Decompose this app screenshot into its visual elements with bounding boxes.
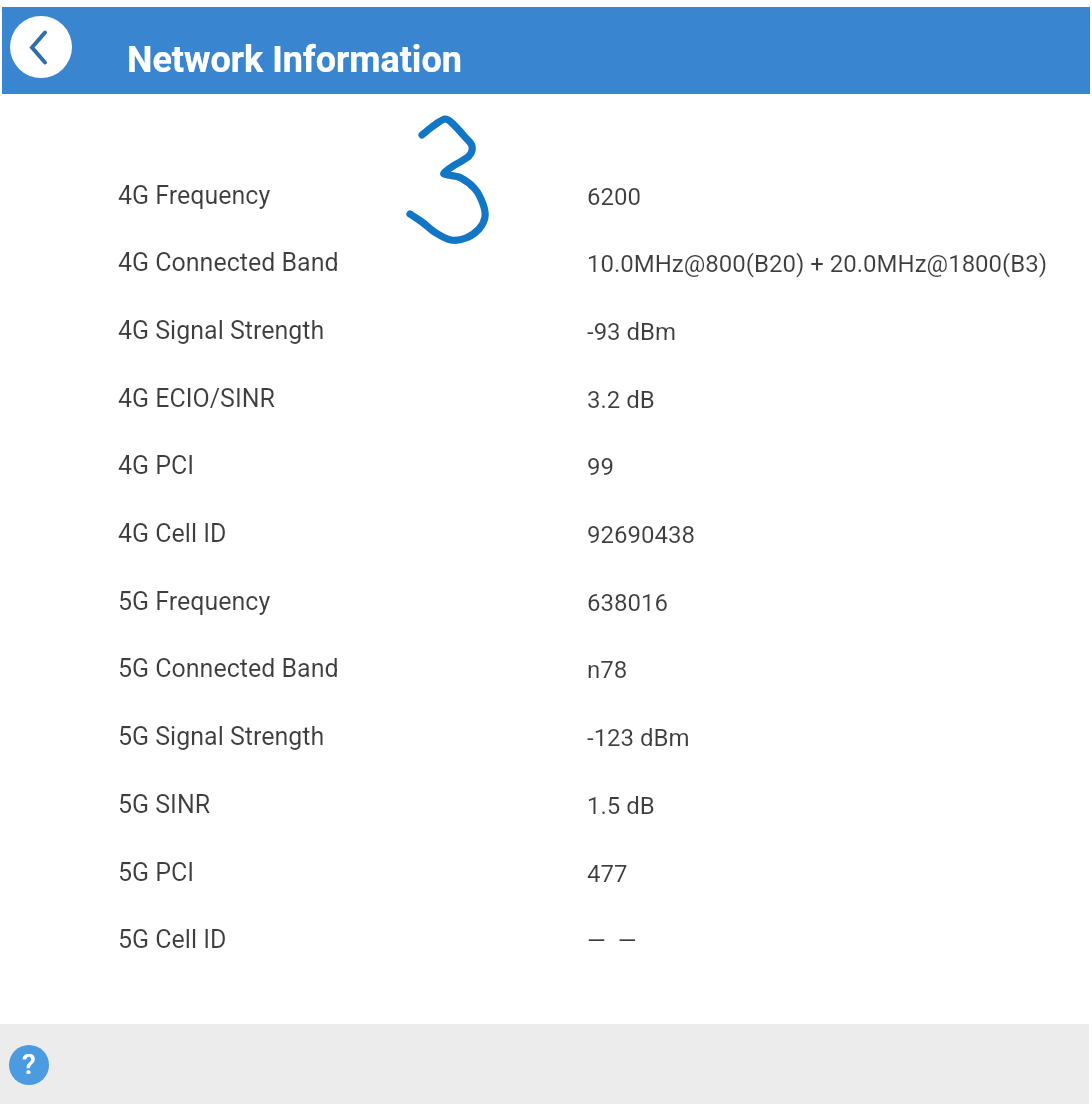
button[interactable]: 4G PCI: [0, 449, 1092, 517]
staticText: 6200: [587, 183, 641, 211]
button[interactable]: 5G Connected Band: [0, 652, 1092, 720]
staticText: 4G ECIO/SINR: [118, 384, 275, 413]
button[interactable]: Help: [9, 1045, 49, 1085]
staticText: 4G Signal Strength: [118, 316, 325, 345]
staticText: 4G Cell ID: [118, 519, 227, 548]
button[interactable]: 4G ECIO/SINR: [0, 382, 1092, 450]
button[interactable]: 5G PCI: [0, 856, 1092, 924]
staticText: n78: [587, 656, 628, 684]
staticText: 3.2 dB: [587, 386, 655, 414]
staticText: 1.5 dB: [587, 792, 655, 820]
staticText: — —: [587, 927, 637, 955]
staticText: 92690438: [587, 521, 695, 549]
staticText: 5G Cell ID: [118, 925, 227, 954]
staticText: 4G PCI: [118, 451, 195, 480]
button[interactable]: 5G Frequency: [0, 585, 1092, 653]
button[interactable]: 4G Cell ID: [0, 517, 1092, 585]
staticText: 477: [587, 860, 628, 888]
staticText: -93 dBm: [587, 318, 677, 346]
staticText: 4G Frequency: [118, 181, 271, 210]
staticText: 5G Frequency: [118, 587, 271, 616]
staticText: 5G Signal Strength: [118, 722, 325, 751]
staticText: 638016: [587, 589, 668, 617]
button[interactable]: 5G Signal Strength: [0, 720, 1092, 788]
staticText: ?: [22, 1048, 36, 1081]
staticText: 99: [587, 453, 614, 481]
staticText: 5G SINR: [118, 790, 211, 819]
button[interactable]: 4G Signal Strength: [0, 314, 1092, 382]
staticText: 4G Connected Band: [118, 248, 339, 277]
button[interactable]: 4G Connected Band: [0, 246, 1092, 314]
button[interactable]: 4G Frequency: [0, 179, 1092, 247]
button[interactable]: 5G SINR: [0, 788, 1092, 856]
button[interactable]: 5G Cell ID: [0, 923, 1092, 991]
button[interactable]: Back: [10, 16, 72, 78]
staticText: 10.0MHz@800(B20) + 20.0MHz@1800(B3): [587, 250, 1048, 278]
staticText: 5G Connected Band: [118, 654, 339, 683]
staticText: -123 dBm: [587, 724, 690, 752]
staticText: 5G PCI: [118, 858, 195, 887]
staticText: Network Information: [127, 39, 462, 81]
